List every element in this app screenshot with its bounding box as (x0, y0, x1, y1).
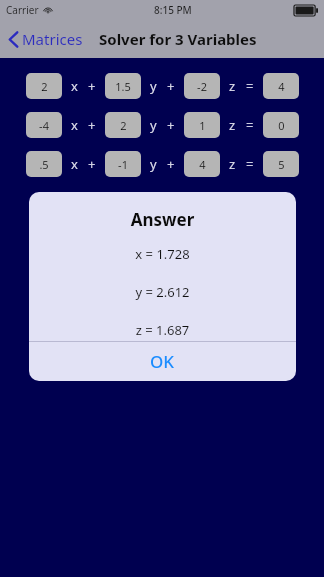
staticText: + (167, 155, 175, 173)
staticText: y (150, 116, 157, 134)
staticText: -1 (118, 157, 128, 172)
staticText: Solver for 3 Variables (99, 29, 257, 49)
staticText: z (229, 155, 236, 173)
staticText: + (88, 155, 96, 173)
staticText: z (229, 116, 236, 134)
staticText: 2 (41, 79, 48, 94)
staticText: + (88, 77, 96, 95)
staticText: 4 (278, 79, 285, 94)
staticText: 1.5 (115, 79, 131, 94)
button[interactable]: -2 (184, 73, 220, 99)
staticText: + (167, 116, 175, 134)
button[interactable]: Matrices (6, 25, 86, 53)
staticText: -2 (197, 79, 207, 94)
button[interactable]: 2 (26, 73, 62, 99)
staticText: + (167, 77, 175, 95)
button[interactable]: 4 (184, 151, 220, 177)
staticText: .5 (39, 157, 49, 172)
staticText: 0 (278, 118, 285, 133)
staticText: 8:15 PM (154, 3, 192, 17)
button[interactable]: 0 (263, 112, 299, 138)
staticText: + (88, 116, 96, 134)
staticText: x (71, 116, 78, 134)
staticText: y (150, 77, 157, 95)
staticText: z (229, 77, 236, 95)
button[interactable]: 5 (263, 151, 299, 177)
staticText: y = 2.612 (29, 283, 296, 301)
staticText: y (150, 155, 157, 173)
button[interactable]: OK (29, 342, 296, 381)
button[interactable]: -4 (26, 112, 62, 138)
staticText: z = 1.687 (29, 321, 296, 339)
staticText: -4 (39, 118, 49, 133)
staticText: 5 (278, 157, 285, 172)
button[interactable]: 1 (184, 112, 220, 138)
staticText: Matrices (22, 29, 83, 49)
button[interactable]: 4 (263, 73, 299, 99)
staticText: x = 1.728 (29, 245, 296, 263)
button[interactable]: .5 (26, 151, 62, 177)
button[interactable]: 2 (105, 112, 141, 138)
button[interactable]: -1 (105, 151, 141, 177)
staticText: = (246, 155, 254, 173)
button[interactable]: 1.5 (105, 73, 141, 99)
staticText: = (246, 116, 254, 134)
staticText: = (246, 77, 254, 95)
staticText: 4 (199, 157, 206, 172)
staticText: Answer (29, 208, 296, 231)
staticText: x (71, 77, 78, 95)
staticText: 1 (199, 118, 206, 133)
staticText: OK (150, 350, 175, 373)
staticText: x (71, 155, 78, 173)
staticText: Carrier (6, 3, 39, 17)
staticText: 2 (120, 118, 127, 133)
